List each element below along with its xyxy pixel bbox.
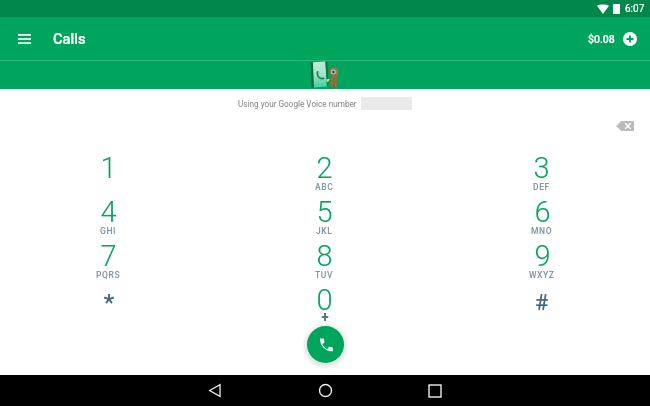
staticText: JKL: [316, 226, 333, 236]
button[interactable]: 7: [0, 239, 216, 283]
staticText: 8: [316, 239, 333, 273]
button[interactable]: 3: [433, 151, 650, 195]
button[interactable]: Open navigation drawer: [8, 23, 40, 55]
button[interactable]: 0: [216, 283, 433, 327]
staticText: $0.08: [588, 33, 615, 45]
button[interactable]: 9: [433, 239, 650, 283]
button[interactable]: Back: [197, 375, 233, 406]
button[interactable]: Call: [307, 326, 344, 363]
staticText: 3: [533, 151, 550, 185]
staticText: Using your Google Voice number: [238, 99, 357, 109]
button[interactable]: Home: [307, 375, 343, 406]
staticText: ABC: [315, 182, 334, 192]
button[interactable]: 6: [433, 195, 650, 239]
staticText: MNO: [531, 226, 553, 236]
button[interactable]: Backspace: [612, 113, 638, 139]
staticText: TUV: [315, 270, 334, 280]
button[interactable]: Pound: [433, 283, 650, 327]
staticText: 1: [100, 151, 117, 185]
staticText: 5: [316, 195, 333, 229]
staticText: 2: [316, 151, 333, 185]
staticText: 6: [534, 195, 551, 229]
staticText: GHI: [100, 226, 117, 236]
staticText: DEF: [533, 182, 550, 192]
button[interactable]: 8: [216, 239, 433, 283]
button[interactable]: 5: [216, 195, 433, 239]
staticText: 4: [100, 195, 117, 229]
staticText: 6:07: [625, 3, 645, 15]
button[interactable]: Recent apps: [417, 375, 453, 406]
staticText: Calls: [53, 30, 86, 47]
staticText: WXYZ: [529, 270, 555, 280]
staticText: 0: [316, 283, 333, 317]
button[interactable]: 1: [0, 151, 216, 195]
staticText: PQRS: [96, 270, 121, 280]
button[interactable]: 4: [0, 195, 216, 239]
staticText: 9: [534, 239, 551, 273]
staticText: 7: [100, 239, 117, 273]
button[interactable]: Add credit: [588, 32, 637, 46]
button[interactable]: Star: [0, 283, 216, 327]
button[interactable]: 2: [216, 151, 433, 195]
